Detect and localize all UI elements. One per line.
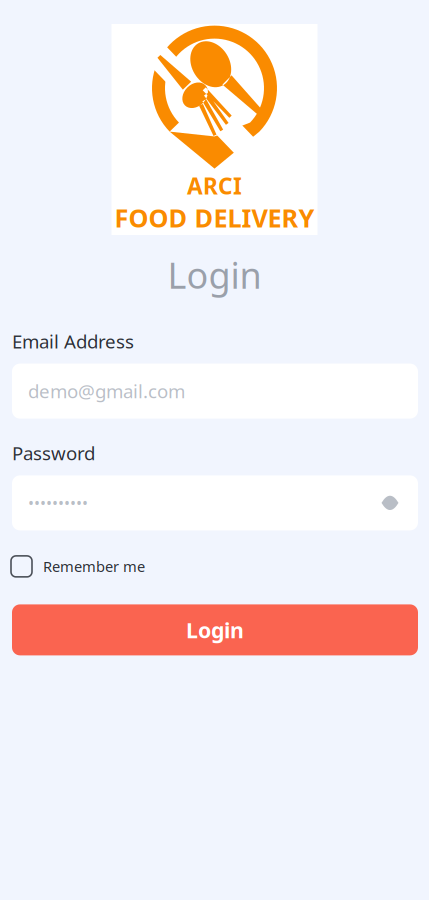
button[interactable]: Show password (373, 486, 407, 520)
staticText: Password (12, 441, 95, 465)
staticText: demo@gmail.com (28, 379, 185, 403)
staticText: ARCI (187, 171, 242, 201)
button[interactable]: Login (12, 604, 418, 655)
staticText: Email Address (12, 329, 134, 354)
staticText: Login (186, 616, 244, 644)
staticText: FOOD DELIVERY (114, 201, 314, 234)
staticText: •••••••••• (28, 492, 88, 513)
button[interactable]: Remember me (11, 552, 417, 580)
staticText: Login (167, 251, 261, 299)
staticText: Remember me (43, 557, 145, 576)
